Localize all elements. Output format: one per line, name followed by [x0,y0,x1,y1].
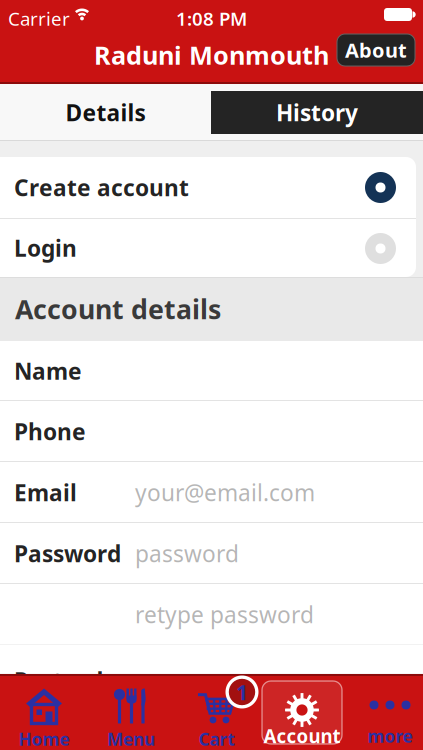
staticText: retype password [135,599,314,629]
staticText: Details [65,97,145,127]
staticText: Email [14,477,77,507]
button[interactable]: Create account [0,157,423,218]
button[interactable]: About [337,34,415,66]
button[interactable]: Login [0,219,423,277]
button[interactable]: Details [0,84,211,141]
button[interactable]: History [211,91,423,134]
staticText: Cart [198,727,235,750]
staticText: Name [14,356,82,386]
staticText: more [367,724,412,747]
staticText: Password [14,538,121,568]
button[interactable]: Cart [175,690,259,748]
button[interactable]: More [348,699,423,749]
staticText: Phone [14,416,86,446]
staticText: About [345,37,407,63]
button[interactable]: Account [262,681,342,744]
staticText: Raduni Monmouth [94,38,329,72]
staticText: Create account [14,172,189,202]
staticText: Login [14,233,77,263]
staticText: 1:08 PM [176,6,247,31]
staticText: Account details [15,291,221,327]
staticText: 1 [236,678,248,706]
staticText: your@email.com [135,477,315,507]
staticText: History [276,97,358,127]
staticText: Account [263,724,340,748]
staticText: password [135,538,239,568]
button[interactable]: Menu [89,690,173,748]
staticText: Menu [107,727,155,750]
staticText: Home [18,727,69,750]
button[interactable]: Home [2,690,86,748]
staticText: Carrier [8,6,70,31]
staticText: Postcode [14,665,117,695]
